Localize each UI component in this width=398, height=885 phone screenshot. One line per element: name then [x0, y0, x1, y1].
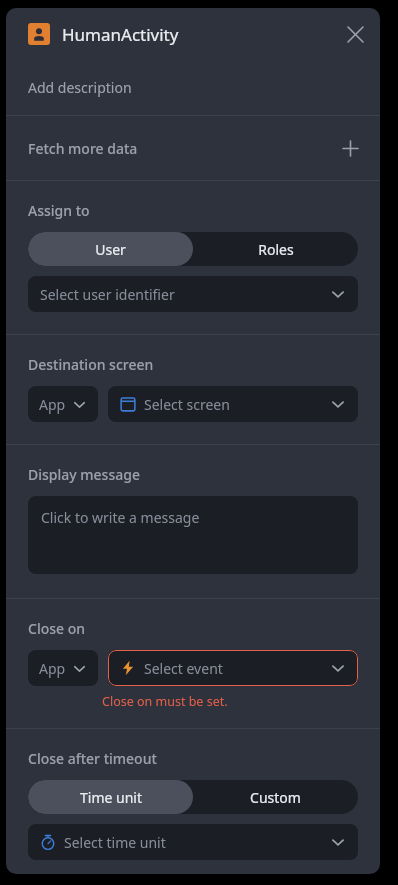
staticText: Destination screen — [28, 355, 154, 374]
staticText: App — [39, 395, 66, 414]
staticText: Click to write a message — [41, 508, 200, 527]
staticText: Close on must be set. — [102, 693, 228, 710]
staticText: Add description — [28, 78, 132, 97]
staticText: Display message — [28, 465, 140, 484]
button[interactable]: Fetch more data — [6, 116, 380, 180]
button[interactable]: Time unit — [28, 780, 193, 814]
button[interactable]: Custom — [193, 780, 358, 814]
button[interactable]: Click to write a message — [28, 496, 358, 574]
button[interactable]: Select event — [108, 650, 358, 686]
staticText: HumanActivity — [62, 23, 338, 46]
staticText: Select screen — [144, 395, 330, 414]
staticText: Select user identifier — [40, 285, 330, 304]
button[interactable]: User — [28, 232, 193, 266]
button[interactable]: App — [28, 650, 98, 686]
button[interactable]: Add — [334, 132, 366, 164]
staticText: App — [39, 659, 66, 678]
button[interactable]: App — [28, 386, 98, 422]
button[interactable]: Select user identifier — [28, 276, 358, 312]
button[interactable]: Close — [338, 17, 372, 51]
staticText: Close after timeout — [28, 749, 157, 768]
staticText: Select event — [144, 659, 330, 678]
staticText: Time unit — [80, 788, 142, 807]
staticText: User — [95, 240, 126, 259]
button[interactable]: Select time unit — [28, 824, 358, 860]
staticText: Roles — [258, 240, 294, 259]
button[interactable]: Roles — [193, 232, 358, 266]
staticText: Select time unit — [64, 833, 330, 852]
button[interactable]: Select screen — [108, 386, 358, 422]
staticText: Assign to — [28, 201, 90, 220]
staticText: Custom — [250, 788, 301, 807]
staticText: Fetch more data — [28, 139, 334, 158]
button[interactable]: Add description — [6, 60, 380, 115]
staticText: Close on — [28, 619, 86, 638]
